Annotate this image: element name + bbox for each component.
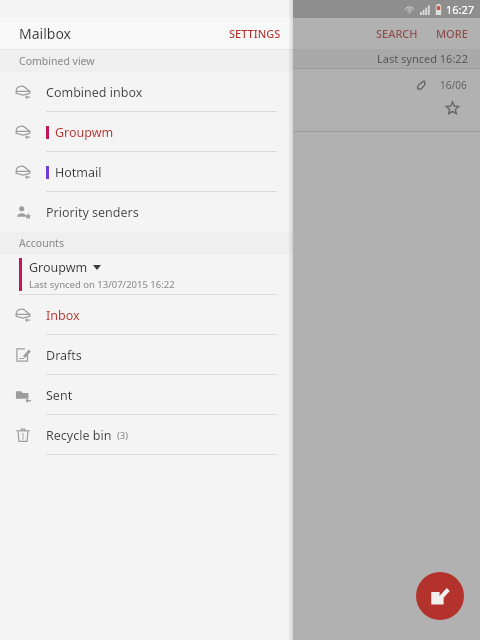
button[interactable]: Priority senders xyxy=(0,192,293,232)
button[interactable]: Recycle bin xyxy=(0,415,293,455)
button[interactable]: Compose new message xyxy=(416,572,464,620)
button[interactable]: Drafts xyxy=(0,335,293,375)
staticText: Last synced 16:22 xyxy=(377,51,468,66)
button[interactable]: Groupwm xyxy=(0,112,293,152)
staticText: Inbox xyxy=(46,307,80,324)
staticText: Recycle bin xyxy=(46,427,112,444)
button[interactable]: Groupwm xyxy=(0,254,293,295)
staticText: Hotmail xyxy=(55,164,102,181)
button[interactable]: Combined inbox xyxy=(0,72,293,112)
button[interactable]: SETTINGS xyxy=(217,18,293,49)
button[interactable]: Inbox xyxy=(0,295,293,335)
staticText: 16:27 xyxy=(446,2,475,17)
button[interactable]: MORE xyxy=(428,18,480,49)
staticText: SETTINGS xyxy=(229,26,281,41)
staticText: Sent xyxy=(46,387,73,404)
staticText: MORE xyxy=(436,26,468,41)
staticText: Groupwm xyxy=(29,259,88,276)
button[interactable]: Hotmail xyxy=(0,152,293,192)
button[interactable]: Sent xyxy=(0,375,293,415)
staticText: Groupwm xyxy=(55,124,114,141)
staticText: Combined inbox xyxy=(46,84,143,101)
staticText: (3) xyxy=(117,429,129,442)
staticText: Accounts xyxy=(19,236,64,250)
button[interactable]: SEARCH xyxy=(366,18,428,49)
staticText: Drafts xyxy=(46,347,82,364)
staticText: Mailbox xyxy=(19,24,71,43)
staticText: Combined view xyxy=(19,54,95,68)
staticText: Last synced on 13/07/2015 16:22 xyxy=(29,278,175,291)
staticText: SEARCH xyxy=(376,26,418,41)
staticText: Priority senders xyxy=(46,204,139,221)
staticText: 16/06 xyxy=(440,78,467,92)
